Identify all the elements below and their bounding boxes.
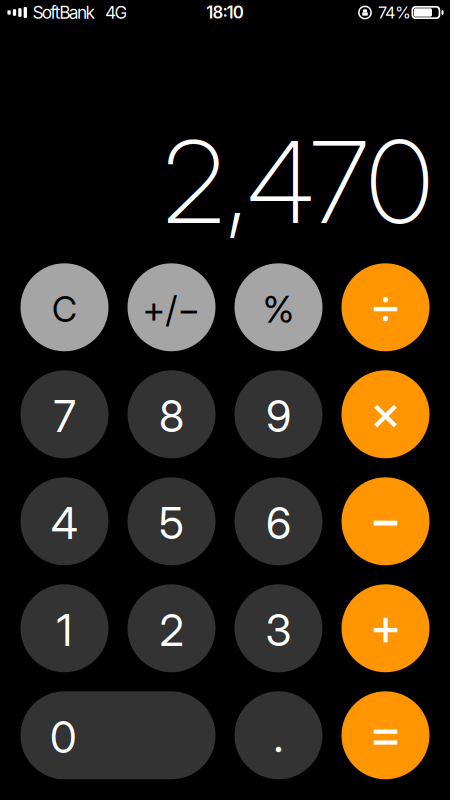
staticText: 2 bbox=[159, 604, 183, 656]
button[interactable]: 0 bbox=[20, 691, 215, 779]
staticText: 7 bbox=[53, 390, 75, 442]
staticText: 5 bbox=[159, 497, 184, 549]
button[interactable]: Add bbox=[341, 584, 429, 672]
staticText: 9 bbox=[266, 390, 291, 442]
staticText: . bbox=[273, 708, 283, 763]
button[interactable]: 3 bbox=[234, 584, 322, 672]
button[interactable]: 4 bbox=[20, 477, 108, 565]
button[interactable]: 7 bbox=[20, 370, 108, 458]
button[interactable]: 1 bbox=[20, 584, 108, 672]
staticText: 74% bbox=[378, 3, 411, 22]
button[interactable]: . bbox=[234, 691, 322, 779]
staticText: 0 bbox=[50, 711, 77, 763]
button[interactable]: Subtract bbox=[341, 477, 429, 565]
staticText: 1 bbox=[56, 604, 72, 656]
staticText: C bbox=[52, 288, 77, 330]
button[interactable]: 8 bbox=[127, 370, 215, 458]
staticText: +/− bbox=[142, 287, 200, 331]
staticText: 6 bbox=[266, 497, 291, 549]
button[interactable]: Equals bbox=[341, 691, 429, 779]
button[interactable]: 6 bbox=[234, 477, 322, 565]
button[interactable]: 5 bbox=[127, 477, 215, 565]
staticText: SoftBank bbox=[32, 2, 96, 23]
button[interactable]: 2 bbox=[127, 584, 215, 672]
button[interactable]: Multiply bbox=[341, 370, 429, 458]
button[interactable]: % bbox=[234, 263, 322, 351]
staticText: 18:10 bbox=[206, 2, 244, 23]
staticText: 4G bbox=[105, 2, 127, 23]
staticText: 4 bbox=[51, 497, 78, 549]
staticText: 2,470 bbox=[163, 113, 432, 250]
staticText: 3 bbox=[265, 604, 291, 656]
staticText: 8 bbox=[159, 390, 184, 442]
staticText: % bbox=[263, 287, 294, 331]
button[interactable]: C bbox=[20, 263, 108, 351]
button[interactable]: 9 bbox=[234, 370, 322, 458]
button[interactable]: +/− bbox=[127, 263, 215, 351]
button[interactable]: Divide bbox=[341, 263, 429, 351]
